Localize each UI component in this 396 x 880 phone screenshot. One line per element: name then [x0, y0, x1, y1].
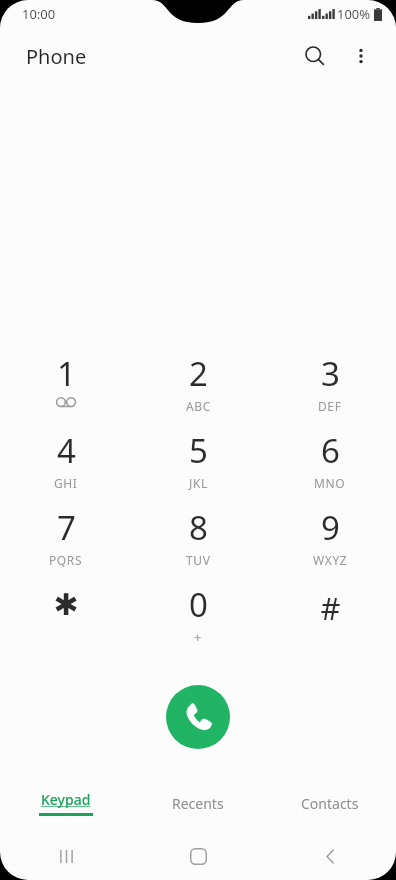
button[interactable]: Back — [264, 832, 396, 880]
staticText: Recents — [172, 794, 224, 813]
staticText: + — [194, 628, 202, 646]
button[interactable]: Search — [292, 34, 338, 78]
button[interactable]: 3 — [264, 348, 396, 425]
button[interactable]: More options — [338, 34, 384, 78]
staticText: 5 — [189, 428, 208, 473]
staticText: GHI — [54, 475, 78, 491]
staticText: TUV — [186, 552, 211, 568]
button[interactable]: Recents — [132, 780, 264, 826]
staticText: 9 — [321, 505, 340, 550]
staticText: 8 — [189, 505, 208, 550]
staticText: 7 — [57, 505, 76, 550]
staticText: ✱ — [53, 587, 79, 622]
button[interactable]: ✱ — [0, 579, 132, 656]
button[interactable]: Contacts — [264, 780, 396, 826]
button[interactable]: 4 — [0, 425, 132, 502]
staticText: 6 — [321, 428, 340, 473]
button[interactable]: 0 — [132, 579, 264, 656]
staticText: 0 — [189, 582, 208, 627]
button[interactable]: 7 — [0, 502, 132, 579]
button[interactable]: Keypad — [0, 780, 132, 826]
staticText: 10:00 — [22, 5, 56, 23]
staticText: Keypad — [41, 790, 91, 809]
staticText: # — [320, 587, 341, 629]
staticText: Contacts — [301, 794, 359, 813]
button[interactable]: 5 — [132, 425, 264, 502]
button[interactable]: 9 — [264, 502, 396, 579]
button[interactable]: 2 — [132, 348, 264, 425]
button[interactable]: Recent apps — [0, 832, 132, 880]
staticText: DEF — [318, 398, 342, 414]
button[interactable]: 1 — [0, 348, 132, 425]
staticText: 4 — [57, 428, 76, 473]
button[interactable]: Call — [166, 685, 230, 749]
button[interactable]: 6 — [264, 425, 396, 502]
staticText: MNO — [314, 475, 346, 491]
button[interactable]: # — [264, 579, 396, 656]
staticText: ABC — [186, 398, 211, 414]
staticText: 100% — [337, 5, 371, 23]
staticText: 2 — [189, 351, 208, 396]
staticText: 1 — [57, 351, 76, 396]
button[interactable]: Home — [132, 832, 264, 880]
staticText: PQRS — [49, 552, 83, 568]
staticText: WXYZ — [313, 552, 348, 568]
staticText: JKL — [189, 475, 208, 491]
staticText: Phone — [26, 43, 87, 70]
button[interactable]: 8 — [132, 502, 264, 579]
staticText: 3 — [321, 351, 340, 396]
